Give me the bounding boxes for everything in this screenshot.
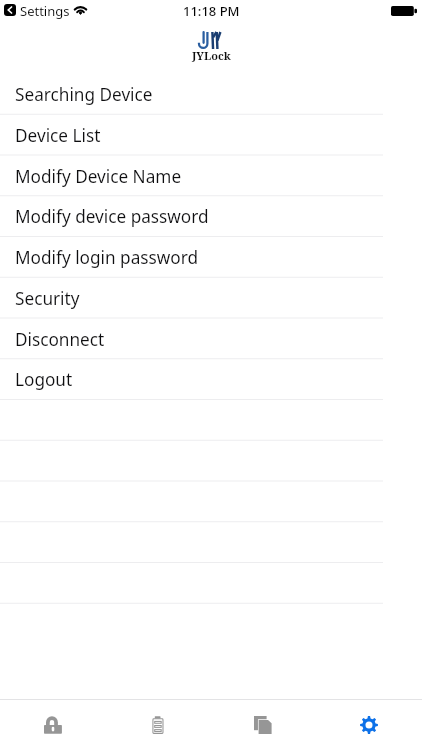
staticText: Modify Device Name: [15, 165, 182, 188]
button[interactable]: Modify Device Name: [0, 156, 422, 197]
button[interactable]: Searching Device: [0, 74, 422, 115]
button[interactable]: Records: [210, 700, 316, 750]
staticText: Disconnect: [15, 328, 105, 351]
staticText: JYLock: [192, 48, 231, 63]
staticText: Settings: [20, 2, 70, 20]
staticText: Device List: [15, 124, 101, 147]
button[interactable]: Modify device password: [0, 196, 422, 237]
button[interactable]: Battery: [105, 700, 210, 750]
button[interactable]: Modify login password: [0, 237, 422, 278]
button[interactable]: Back: [4, 4, 16, 16]
button[interactable]: Lock: [0, 700, 105, 750]
button[interactable]: Logout: [0, 359, 422, 400]
button[interactable]: Disconnect: [0, 319, 422, 360]
button[interactable]: Device List: [0, 115, 422, 156]
staticText: 11:18 PM: [183, 2, 240, 20]
staticText: Security: [15, 287, 80, 310]
button[interactable]: Security: [0, 278, 422, 319]
staticText: Logout: [15, 368, 73, 391]
staticText: Modify login password: [15, 246, 198, 269]
staticText: Modify device password: [15, 205, 209, 228]
button[interactable]: Settings: [316, 700, 422, 750]
staticText: Searching Device: [15, 83, 153, 106]
